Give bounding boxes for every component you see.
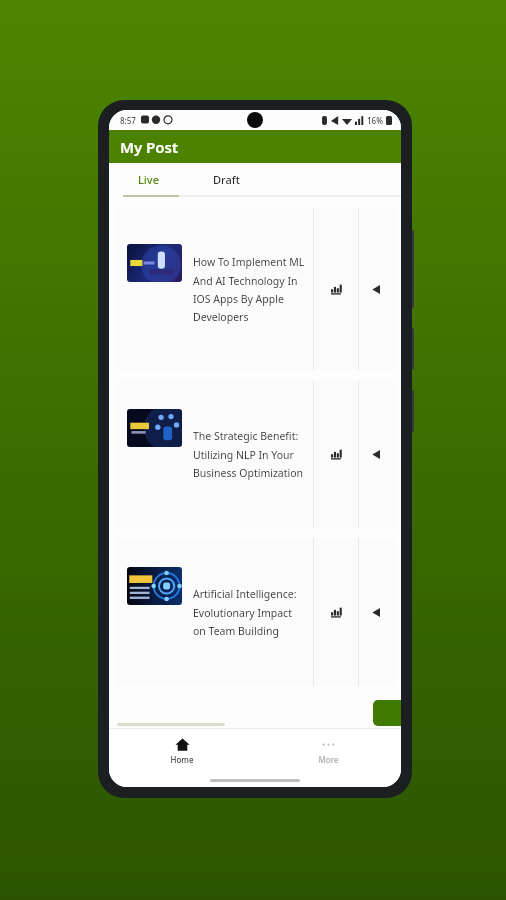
button[interactable]: More (255, 729, 401, 773)
staticText: Home (170, 754, 194, 765)
staticText: My Post (120, 137, 179, 157)
staticText: Live (138, 172, 159, 187)
staticText: More (318, 754, 339, 765)
button[interactable]: Share (359, 380, 395, 528)
button[interactable]: Live (109, 163, 187, 195)
button[interactable]: Artificial Intelligence: Evolutionary Im… (115, 538, 395, 686)
button[interactable]: Share (359, 208, 395, 370)
button[interactable]: View stats (314, 208, 358, 370)
staticText: Draft (213, 172, 240, 187)
button[interactable]: View stats (314, 538, 358, 686)
staticText: 16% (367, 115, 383, 126)
button[interactable]: How To Implement ML And AI Technology In… (115, 208, 395, 370)
button[interactable]: The Strategic Benefit: Utilizing NLP In … (115, 380, 395, 528)
button[interactable]: Create post (373, 700, 401, 726)
button[interactable]: Home (109, 729, 255, 773)
button[interactable]: View stats (314, 380, 358, 528)
staticText: The Strategic Benefit: Utilizing NLP In … (193, 429, 307, 480)
button[interactable]: Draft (187, 163, 265, 195)
staticText: How To Implement ML And AI Technology In… (193, 255, 307, 324)
staticText: 8:57 (120, 115, 136, 126)
button[interactable]: Share (359, 538, 395, 686)
staticText: Artificial Intelligence: Evolutionary Im… (193, 587, 307, 638)
